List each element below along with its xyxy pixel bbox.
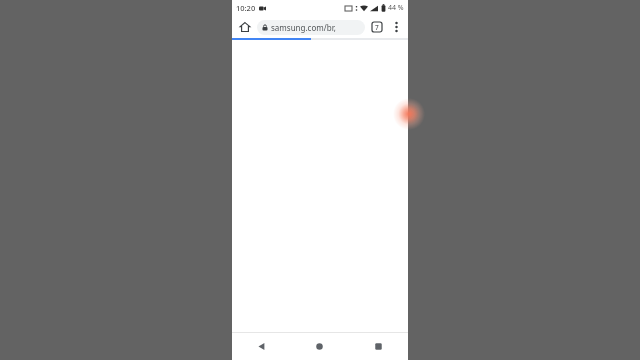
button[interactable]: Back bbox=[232, 333, 290, 360]
staticText: 10:20 bbox=[236, 3, 256, 13]
staticText: 44 % bbox=[388, 3, 404, 13]
button[interactable]: samsung.com/br, bbox=[257, 20, 365, 35]
staticText: samsung.com/br, bbox=[271, 22, 336, 33]
button[interactable]: Home bbox=[235, 17, 255, 37]
button[interactable]: Home bbox=[290, 333, 349, 360]
button[interactable]: More options bbox=[386, 17, 406, 37]
button[interactable]: Switch tabs, 7 open bbox=[368, 18, 386, 36]
staticText: 7 bbox=[375, 23, 379, 32]
button[interactable]: Recent apps bbox=[349, 333, 408, 360]
